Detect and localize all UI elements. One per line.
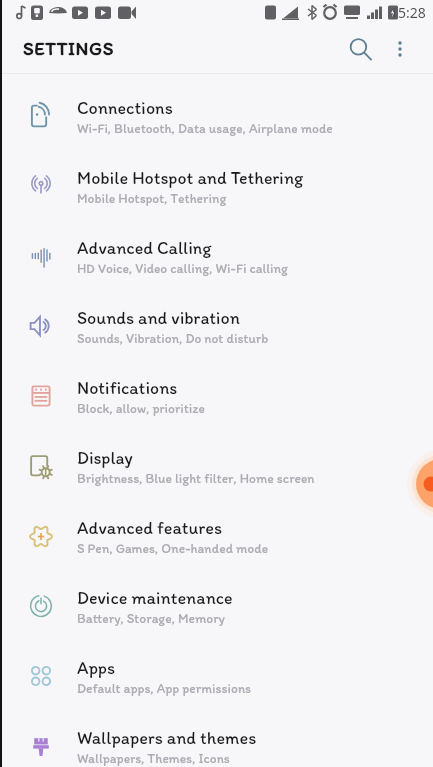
- button[interactable]: Apps: [0, 647, 433, 717]
- staticText: Brightness, Blue light filter, Home scre…: [77, 470, 315, 486]
- button[interactable]: Search: [338, 27, 382, 71]
- staticText: Sounds, Vibration, Do not disturb: [77, 330, 269, 346]
- staticText: Default apps, App permissions: [77, 680, 252, 696]
- button[interactable]: Connections: [0, 87, 433, 157]
- staticText: Wallpapers and themes: [77, 727, 257, 749]
- staticText: Apps: [77, 657, 116, 679]
- staticText: Wallpapers, Themes, Icons: [77, 750, 230, 766]
- button[interactable]: Notifications: [0, 367, 433, 437]
- staticText: SETTINGS: [23, 37, 114, 60]
- staticText: Advanced Calling: [77, 237, 212, 259]
- staticText: Advanced features: [77, 517, 222, 539]
- button[interactable]: Device maintenance: [0, 577, 433, 647]
- staticText: Device maintenance: [77, 587, 233, 609]
- staticText: Sounds and vibration: [77, 307, 240, 329]
- button[interactable]: Wallpapers and themes: [0, 717, 433, 767]
- button[interactable]: Sounds and vibration: [0, 297, 433, 367]
- staticText: Wi-Fi, Bluetooth, Data usage, Airplane m…: [77, 120, 333, 136]
- staticText: Mobile Hotspot, Tethering: [77, 190, 227, 206]
- button[interactable]: More options: [378, 27, 422, 71]
- staticText: HD Voice, Video calling, Wi-Fi calling: [77, 260, 288, 276]
- staticText: Connections: [77, 97, 173, 119]
- button[interactable]: Mobile Hotspot and Tethering: [0, 157, 433, 227]
- staticText: Mobile Hotspot and Tethering: [77, 167, 304, 189]
- button[interactable]: Display: [0, 437, 433, 507]
- staticText: S Pen, Games, One-handed mode: [77, 540, 269, 556]
- staticText: Notifications: [77, 377, 178, 399]
- staticText: Battery, Storage, Memory: [77, 610, 225, 626]
- button[interactable]: Advanced features: [0, 507, 433, 577]
- staticText: Block, allow, prioritize: [77, 400, 205, 416]
- staticText: 15:28: [390, 3, 426, 22]
- button[interactable]: Advanced Calling: [0, 227, 433, 297]
- staticText: Display: [77, 447, 133, 469]
